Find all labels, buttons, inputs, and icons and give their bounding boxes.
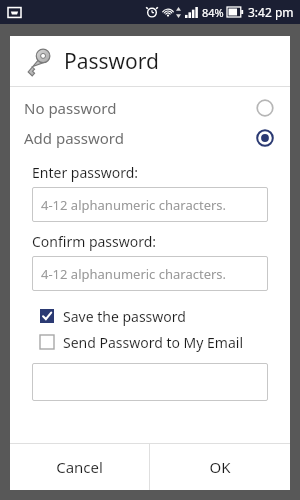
button[interactable]: No password (10, 93, 290, 123)
staticText: 3:42 pm (248, 4, 294, 20)
staticText: 4-12 alphanumeric characters. (41, 265, 227, 283)
button[interactable] (32, 363, 268, 401)
button[interactable]: Add password (10, 123, 290, 153)
staticText: Add password (24, 128, 124, 148)
button[interactable]: Send Password to My Email (10, 329, 290, 355)
staticText: Cancel (56, 457, 103, 477)
staticText: 4-12 alphanumeric characters. (41, 196, 227, 214)
button[interactable]: OK (150, 444, 290, 490)
staticText: 84% (202, 5, 224, 20)
staticText: OK (209, 457, 231, 477)
button[interactable]: 4-12 alphanumeric characters. (32, 256, 268, 291)
staticText: Enter password: (32, 163, 139, 182)
staticText: Password (64, 47, 159, 76)
staticText: Send Password to My Email (63, 333, 244, 352)
staticText: Confirm password: (32, 232, 157, 251)
button[interactable]: Cancel (10, 444, 149, 490)
button[interactable]: 4-12 alphanumeric characters. (32, 187, 268, 222)
staticText: Save the password (63, 307, 186, 326)
button[interactable]: Save the password (10, 303, 290, 329)
staticText: No password (24, 98, 117, 118)
